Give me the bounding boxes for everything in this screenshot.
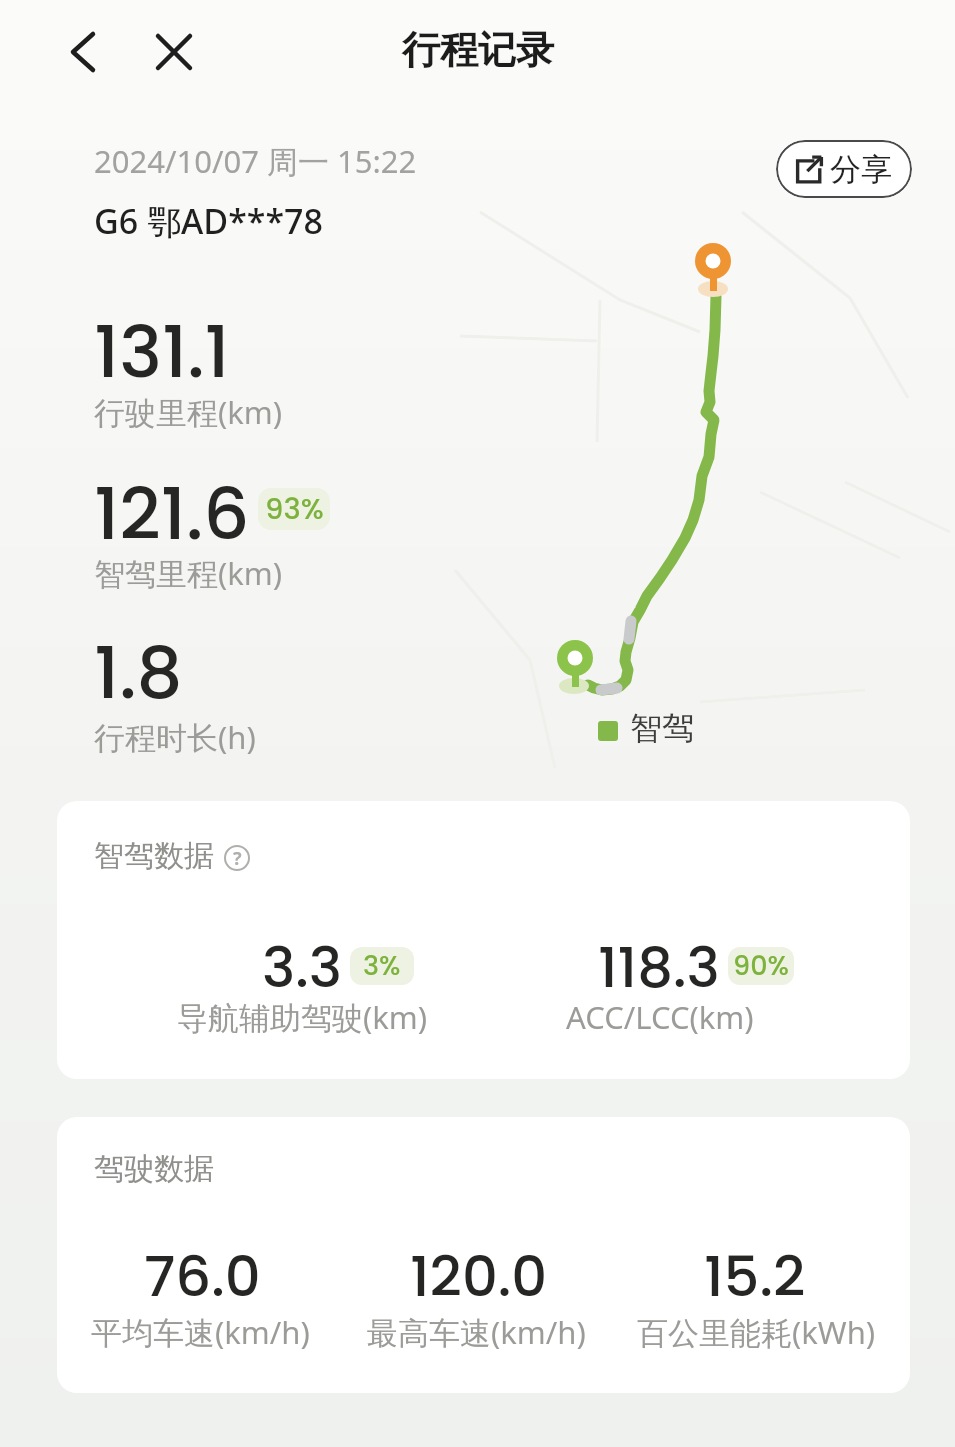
- staticText: 行程时长(h): [94, 716, 256, 758]
- staticText: 93%: [265, 489, 324, 530]
- staticText: 121.6: [94, 463, 250, 564]
- staticText: 智驾: [630, 708, 694, 748]
- staticText: 智驾里程(km): [94, 552, 283, 594]
- staticText: ?: [233, 846, 242, 871]
- staticText: 131.1: [94, 301, 230, 402]
- staticText: 百公里能耗(kWh): [637, 1311, 876, 1353]
- staticText: 驾驶数据: [94, 1150, 214, 1188]
- button[interactable]: [148, 24, 200, 80]
- staticText: 2024/10/07 周一 15:22: [94, 140, 417, 182]
- button[interactable]: 分享: [776, 140, 912, 198]
- staticText: 平均车速(km/h): [91, 1311, 310, 1353]
- button[interactable]: [58, 24, 106, 80]
- staticText: 76.0: [144, 1237, 261, 1315]
- staticText: 3.3: [262, 928, 343, 1006]
- staticText: 3%: [363, 947, 401, 985]
- button[interactable]: ?: [224, 845, 250, 871]
- staticText: 90%: [733, 947, 789, 985]
- staticText: ACC/LCC(km): [566, 996, 754, 1038]
- staticText: 120.0: [410, 1237, 548, 1315]
- staticText: 分享: [830, 150, 892, 189]
- staticText: 118.3: [598, 928, 720, 1006]
- staticText: 行程记录: [402, 26, 554, 74]
- staticText: G6 鄂AD***78: [94, 198, 323, 244]
- staticText: 智驾数据: [94, 837, 214, 875]
- staticText: 最高车速(km/h): [367, 1311, 586, 1353]
- staticText: 导航辅助驾驶(km): [177, 996, 428, 1038]
- staticText: 1.8: [94, 622, 183, 723]
- staticText: 行驶里程(km): [94, 391, 283, 433]
- staticText: 15.2: [704, 1237, 806, 1315]
